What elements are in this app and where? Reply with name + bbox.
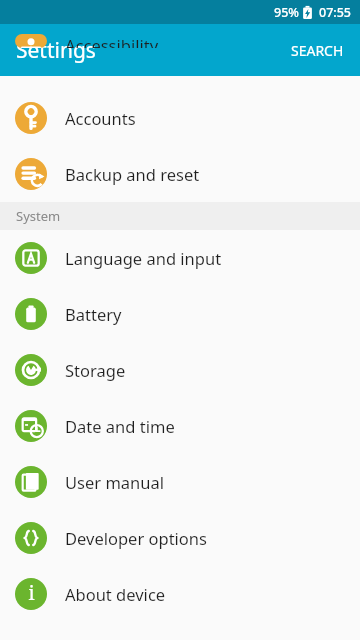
staticText: Accessibility (65, 34, 159, 48)
staticText: Developer options (65, 527, 207, 549)
staticText: i (28, 580, 35, 606)
button[interactable]: Date and time (0, 398, 360, 454)
button[interactable]: i (0, 566, 360, 622)
button[interactable]: Storage (0, 342, 360, 398)
button[interactable]: Language and input (0, 230, 360, 286)
button[interactable]: Developer options (0, 510, 360, 566)
staticText: Backup and reset (65, 163, 200, 185)
staticText: Language and input (65, 247, 222, 269)
staticText: About device (65, 583, 166, 605)
button[interactable]: Battery (0, 286, 360, 342)
staticText: Battery (65, 303, 122, 325)
staticText: 07:55 (319, 4, 352, 21)
button[interactable]: User manual (0, 454, 360, 510)
staticText: SEARCH (291, 41, 344, 60)
button[interactable]: Accounts (0, 90, 360, 146)
staticText: Storage (65, 359, 126, 381)
staticText: User manual (65, 471, 164, 493)
button[interactable]: Backup and reset (0, 146, 360, 202)
staticText: System (16, 207, 61, 225)
staticText: Accounts (65, 107, 136, 129)
staticText: 95% (274, 4, 299, 21)
staticText: Settings (16, 36, 96, 65)
staticText: Date and time (65, 415, 175, 437)
button[interactable]: SEARCH (275, 29, 360, 72)
